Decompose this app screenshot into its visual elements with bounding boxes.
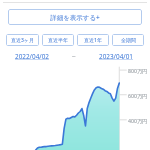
staticText: 600万円: [128, 92, 148, 99]
button[interactable]: 直近3ヶ月: [6, 34, 39, 46]
staticText: 400万円: [128, 117, 148, 124]
button[interactable]: 全期間: [112, 34, 144, 46]
button[interactable]: 直近1年: [77, 34, 109, 46]
other: 資産推移グラフ: [0, 65, 150, 150]
staticText: 全期間: [121, 37, 136, 43]
staticText: 800万円: [128, 67, 148, 74]
staticText: 直近3ヶ月: [11, 37, 34, 44]
button[interactable]: 2022/04/02: [15, 52, 49, 61]
staticText: 直近1年: [84, 37, 102, 44]
button[interactable]: 2023/04/01: [99, 52, 133, 61]
staticText: 詳細を表示する+: [50, 13, 100, 22]
button[interactable]: 直近半年: [42, 34, 74, 46]
button[interactable]: 詳細を表示する+: [8, 9, 142, 25]
staticText: 直近半年: [48, 37, 68, 43]
staticText: ～: [71, 53, 77, 60]
